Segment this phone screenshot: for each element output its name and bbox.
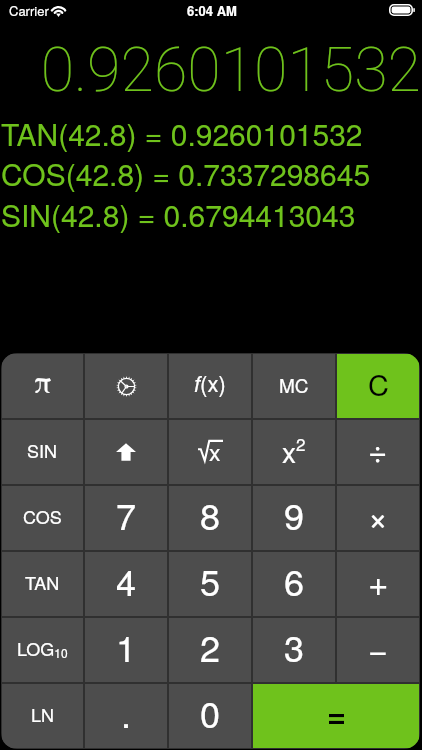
- button[interactable]: Equals: [253, 684, 419, 748]
- staticText: 2: [200, 621, 221, 673]
- staticText: x: [209, 435, 221, 467]
- staticText: C: [368, 363, 389, 405]
- button[interactable]: ×: [337, 486, 419, 550]
- button[interactable]: 6: [253, 552, 335, 616]
- staticText: COS: [23, 503, 62, 529]
- button[interactable]: ÷: [337, 420, 419, 484]
- button[interactable]: Square root: [169, 420, 251, 484]
- button[interactable]: TAN: [2, 552, 83, 616]
- button[interactable]: MC: [253, 354, 335, 418]
- staticText: MC: [279, 371, 309, 398]
- staticText: 0.9260101532: [0, 34, 421, 105]
- button[interactable]: 0: [169, 684, 251, 748]
- button[interactable]: 9: [253, 486, 335, 550]
- staticText: TAN(42.8) = 0.9260101532: [1, 112, 422, 155]
- button[interactable]: f(x): [169, 354, 251, 418]
- staticText: ×: [368, 491, 388, 540]
- button[interactable]: SIN: [2, 420, 83, 484]
- button[interactable]: 1: [85, 618, 167, 682]
- staticText: ÷: [368, 425, 388, 472]
- button[interactable]: .: [85, 684, 167, 748]
- staticText: 1: [116, 621, 137, 673]
- button[interactable]: LN: [2, 684, 83, 748]
- staticText: x2: [282, 431, 306, 471]
- staticText: COS(42.8) = 0.7337298645: [1, 152, 422, 195]
- staticText: TAN: [25, 569, 60, 595]
- staticText: SIN: [27, 437, 58, 463]
- button[interactable]: 2: [169, 618, 251, 682]
- staticText: 3: [284, 621, 305, 673]
- staticText: 6: [284, 555, 305, 607]
- staticText: −: [368, 623, 388, 672]
- staticText: 0: [200, 687, 221, 739]
- button[interactable]: LOG10: [2, 618, 83, 682]
- staticText: 7: [116, 489, 137, 541]
- staticText: 6:04 AM: [187, 1, 237, 20]
- staticText: Carrier: [9, 1, 49, 20]
- staticText: 5: [200, 555, 221, 607]
- button[interactable]: −: [337, 618, 419, 682]
- button[interactable]: 3: [253, 618, 335, 682]
- staticText: SIN(42.8) = 0.6794413043: [1, 193, 422, 236]
- staticText: +: [368, 556, 389, 606]
- button[interactable]: Shift: [85, 420, 167, 484]
- button[interactable]: 8: [169, 486, 251, 550]
- button[interactable]: π: [2, 354, 83, 418]
- button[interactable]: 5: [169, 552, 251, 616]
- staticText: f(x): [194, 367, 226, 399]
- staticText: 4: [116, 555, 137, 607]
- staticText: π: [34, 361, 52, 401]
- button[interactable]: C: [337, 354, 419, 418]
- staticText: LN: [31, 701, 55, 727]
- button[interactable]: Settings: [85, 354, 167, 418]
- button[interactable]: 7: [85, 486, 167, 550]
- staticText: .: [121, 687, 132, 739]
- button[interactable]: x2: [253, 420, 335, 484]
- staticText: 9: [284, 489, 305, 541]
- staticText: 8: [200, 489, 221, 541]
- button[interactable]: 4: [85, 552, 167, 616]
- staticText: LOG10: [17, 635, 68, 662]
- button[interactable]: +: [337, 552, 419, 616]
- button[interactable]: COS: [2, 486, 83, 550]
